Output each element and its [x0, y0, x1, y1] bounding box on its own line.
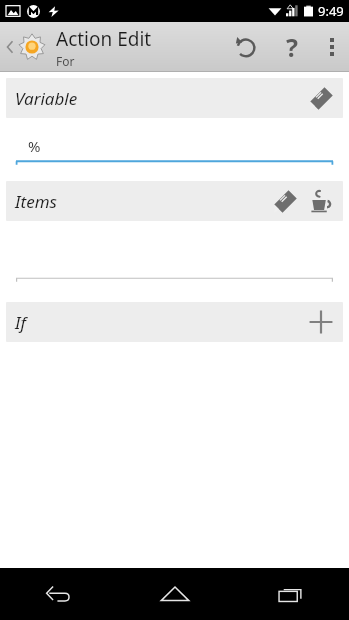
staticText: 9:49: [318, 2, 344, 20]
button[interactable]: More options: [315, 22, 349, 72]
staticText: Action Edit: [56, 26, 152, 52]
button[interactable]: Preset: [303, 181, 339, 221]
button[interactable]: Variable: [6, 78, 343, 118]
button[interactable]: Edit: [303, 78, 339, 118]
button[interactable]: Edit: [267, 181, 303, 221]
button[interactable]: Back: [0, 33, 50, 61]
staticText: Items: [15, 190, 57, 213]
button[interactable]: %: [16, 136, 333, 164]
button[interactable]: Recent apps: [233, 568, 349, 620]
button[interactable]: [16, 253, 333, 281]
staticText: ?: [286, 30, 298, 64]
button[interactable]: Back: [0, 568, 117, 620]
staticText: Variable: [15, 87, 78, 110]
button[interactable]: Items: [6, 181, 343, 221]
button[interactable]: Undo: [223, 22, 269, 72]
staticText: For: [56, 53, 75, 69]
button[interactable]: If: [6, 302, 343, 342]
button[interactable]: Home: [117, 568, 233, 620]
button[interactable]: Help: [269, 22, 315, 72]
button[interactable]: Add: [303, 302, 339, 342]
staticText: %: [28, 136, 41, 156]
staticText: If: [15, 311, 26, 334]
